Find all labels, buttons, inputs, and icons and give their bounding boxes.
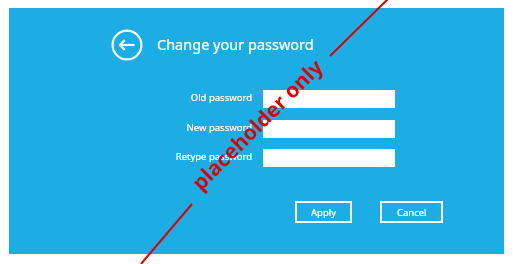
staticText: placeholder only — [185, 52, 330, 197]
staticText: Retype password — [140, 150, 252, 163]
button[interactable]: Apply — [295, 201, 352, 223]
staticText: Apply — [311, 206, 337, 219]
button[interactable]: Cancel — [380, 201, 443, 223]
staticText: Cancel — [397, 206, 427, 219]
button[interactable]: Password input field — [263, 90, 395, 108]
button[interactable]: Back — [111, 29, 143, 61]
button[interactable]: Password input field — [263, 120, 395, 138]
staticText: Old password — [140, 91, 252, 104]
staticText: New password — [140, 121, 252, 134]
staticText: Change your password — [157, 34, 314, 54]
